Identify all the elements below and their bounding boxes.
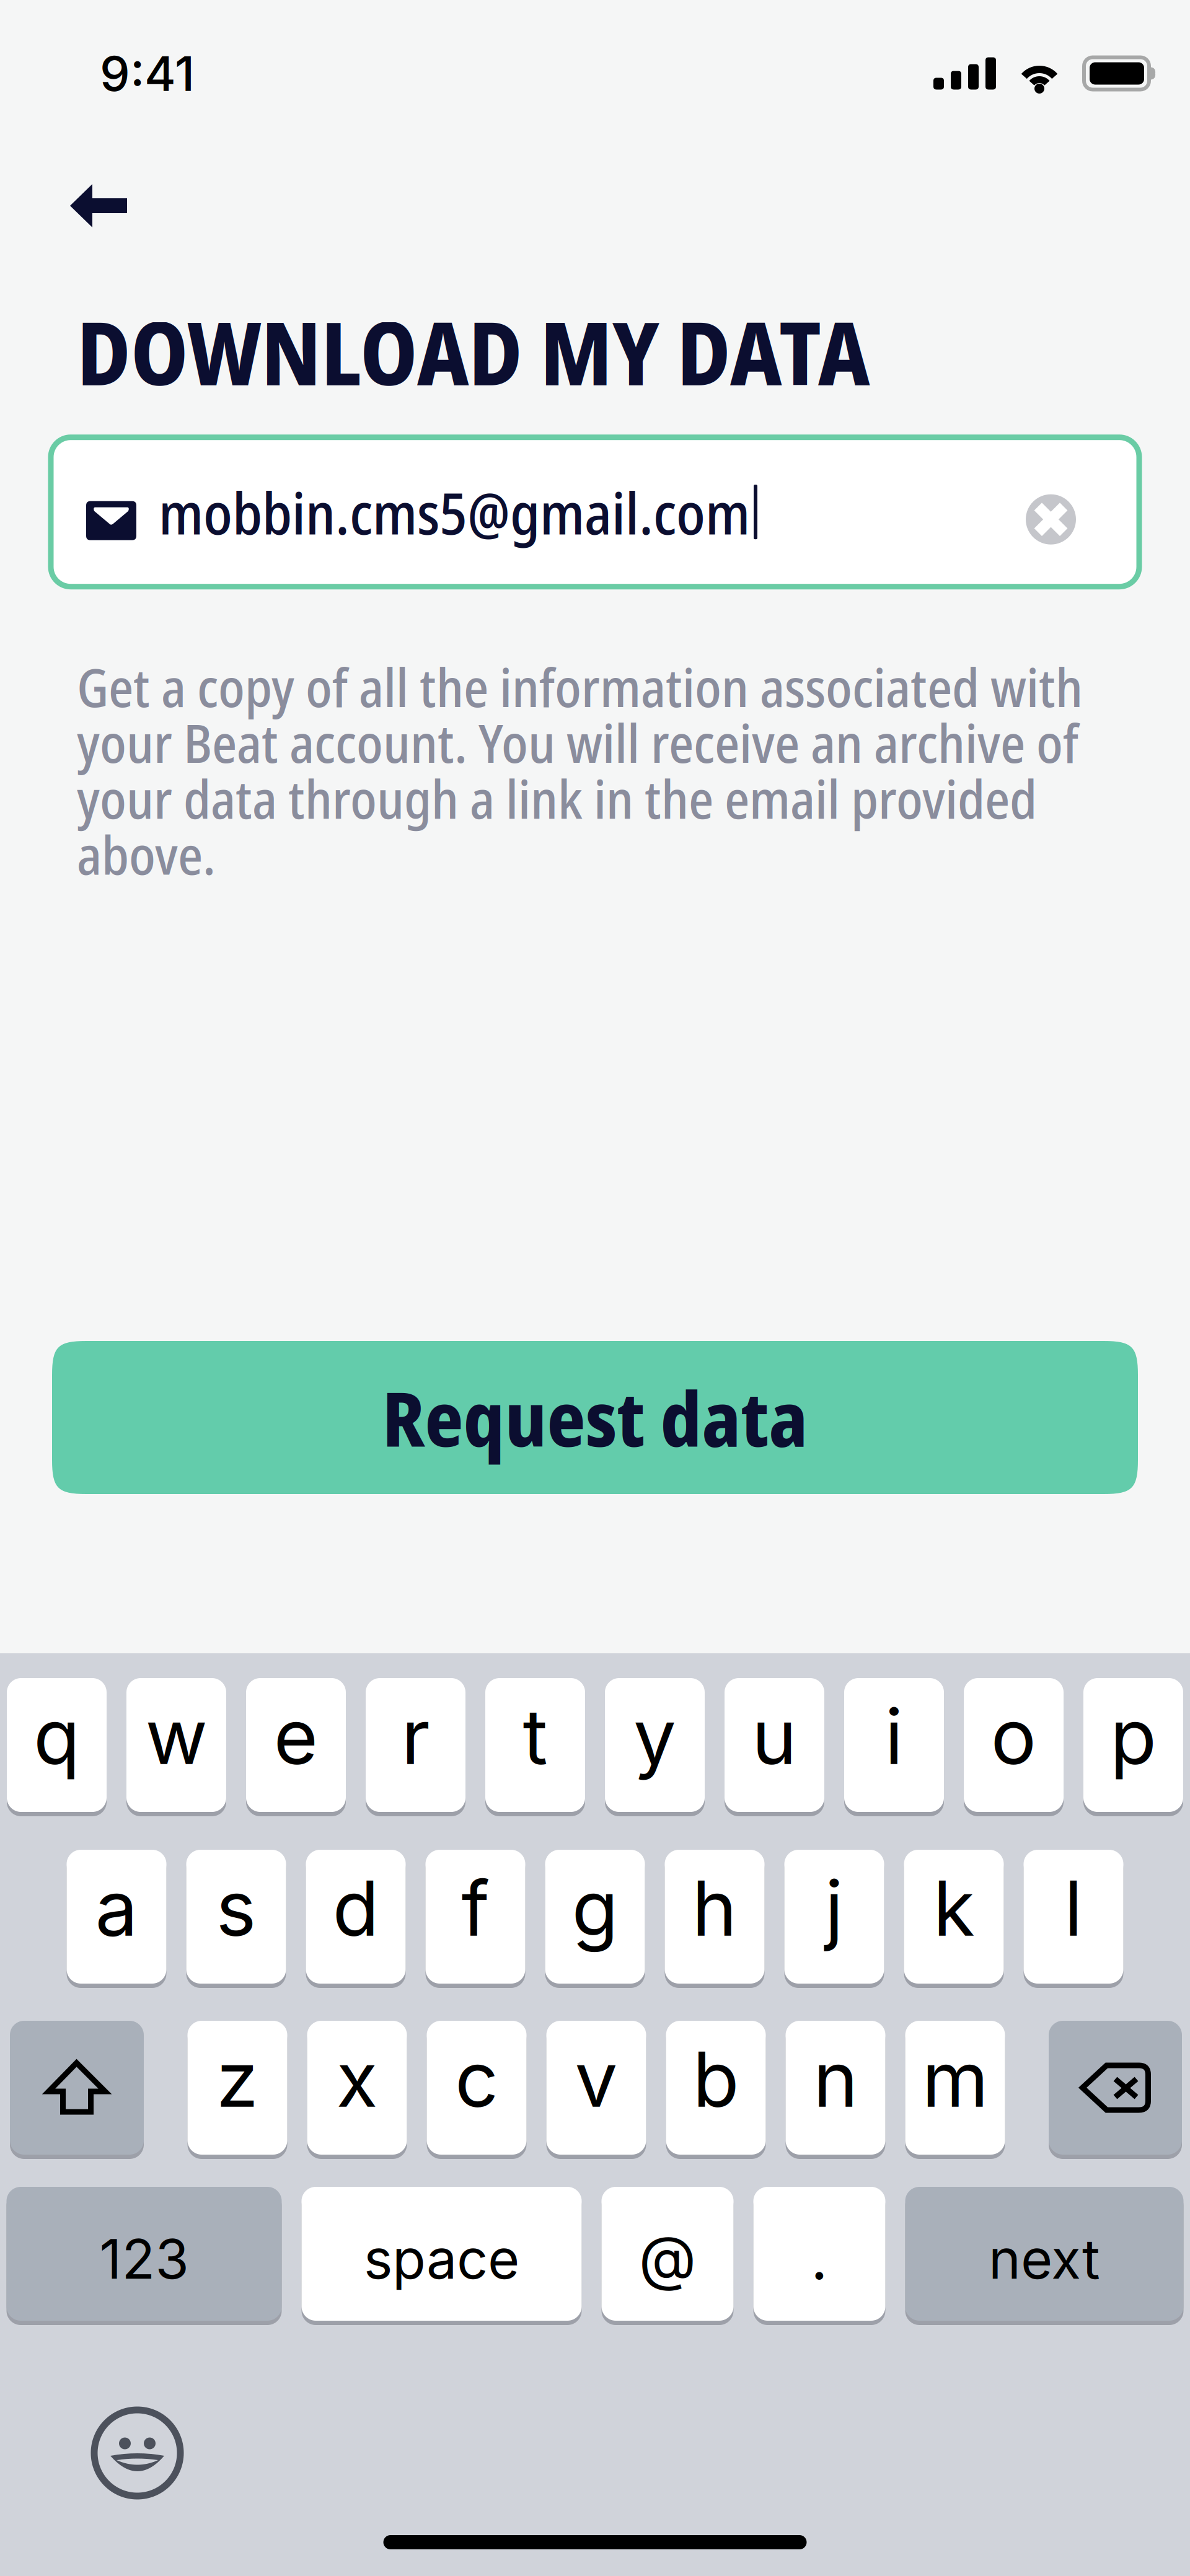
button[interactable]: q <box>7 1678 107 1817</box>
staticText: z <box>216 2033 258 2125</box>
button[interactable]: e <box>246 1678 346 1817</box>
button[interactable] <box>1049 2021 1182 2160</box>
staticText: i <box>885 1690 903 1782</box>
button[interactable]: Choose emoji <box>94 2410 180 2496</box>
button[interactable]: f <box>425 1850 525 1989</box>
staticText: q <box>33 1690 80 1782</box>
button[interactable]: m <box>905 2021 1005 2160</box>
button[interactable]: r <box>366 1678 465 1817</box>
staticText: g <box>572 1862 618 1954</box>
staticText: h <box>692 1862 737 1954</box>
button[interactable]: n <box>786 2021 885 2160</box>
button[interactable]: 123 <box>7 2187 282 2326</box>
staticText: @ <box>639 2222 696 2294</box>
staticText: f <box>461 1862 489 1954</box>
staticText: r <box>401 1690 430 1782</box>
button[interactable]: @ <box>602 2187 734 2326</box>
staticText: k <box>933 1862 975 1954</box>
button[interactable]: space <box>302 2187 582 2326</box>
staticText: Request data <box>382 1366 808 1469</box>
button[interactable]: Back <box>54 166 143 245</box>
staticText: next <box>989 2226 1100 2292</box>
button[interactable]: h <box>665 1850 765 1989</box>
staticText: l <box>1064 1862 1083 1954</box>
button[interactable]: j <box>784 1850 884 1989</box>
staticText: mobbin.cms5@gmail.com <box>159 473 750 551</box>
button[interactable]: t <box>485 1678 585 1817</box>
staticText: a <box>95 1862 138 1954</box>
staticText: b <box>693 2033 739 2125</box>
staticText: Get a copy of all the information associ… <box>77 650 1083 890</box>
staticText: v <box>575 2033 618 2125</box>
staticText: w <box>145 1690 207 1782</box>
button[interactable]: k <box>904 1850 1004 1989</box>
button[interactable]: x <box>307 2021 407 2160</box>
staticText: t <box>523 1690 548 1782</box>
button[interactable]: s <box>186 1850 286 1989</box>
button[interactable]: . <box>753 2187 885 2326</box>
button[interactable]: z <box>187 2021 287 2160</box>
button[interactable]: b <box>666 2021 766 2160</box>
button[interactable]: d <box>306 1850 406 1989</box>
button[interactable]: c <box>427 2021 527 2160</box>
button[interactable]: w <box>126 1678 226 1817</box>
staticText: 123 <box>99 2226 189 2292</box>
button[interactable]: o <box>964 1678 1064 1817</box>
button[interactable]: Request data <box>52 1341 1138 1494</box>
staticText: space <box>364 2226 519 2292</box>
staticText: m <box>922 2033 988 2125</box>
button[interactable]: i <box>844 1678 944 1817</box>
staticText: DOWNLOAD MY DATA <box>77 292 870 411</box>
staticText: y <box>633 1690 676 1782</box>
button[interactable]: Clear text <box>1026 479 1076 545</box>
button[interactable] <box>10 2021 144 2160</box>
staticText: x <box>336 2033 378 2125</box>
button[interactable]: v <box>546 2021 646 2160</box>
button[interactable]: l <box>1024 1850 1123 1989</box>
button[interactable]: a <box>67 1850 166 1989</box>
staticText: n <box>813 2033 858 2125</box>
button[interactable]: p <box>1083 1678 1183 1817</box>
staticText: u <box>752 1690 797 1782</box>
staticText: p <box>1110 1690 1157 1782</box>
staticText: s <box>216 1862 256 1954</box>
button[interactable]: u <box>725 1678 824 1817</box>
staticText: d <box>333 1862 379 1954</box>
button[interactable]: y <box>605 1678 705 1817</box>
staticText: o <box>991 1690 1037 1782</box>
staticText: c <box>455 2033 498 2125</box>
button[interactable]: g <box>545 1850 645 1989</box>
button[interactable]: next <box>905 2187 1183 2326</box>
staticText: j <box>825 1862 844 1954</box>
staticText: e <box>274 1690 318 1782</box>
staticText: . <box>811 2222 828 2294</box>
staticText: 9:41 <box>100 44 195 102</box>
